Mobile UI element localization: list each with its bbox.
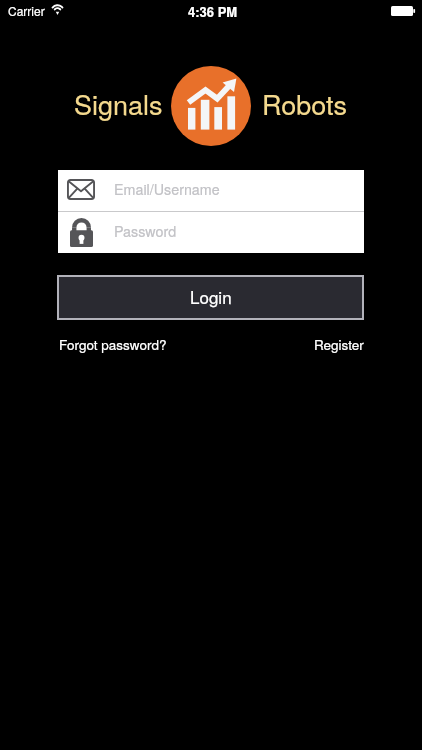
staticText: Signals	[74, 84, 163, 123]
staticText: Carrier	[8, 2, 45, 19]
other: Password	[70, 218, 93, 247]
staticText: Email/Username	[114, 179, 220, 199]
staticText: 4:36 PM	[188, 2, 238, 21]
staticText: Register	[314, 335, 364, 354]
staticText: Login	[190, 284, 232, 308]
button[interactable]: Forgot password?	[55, 331, 171, 358]
button[interactable]: Email	[58, 170, 364, 211]
staticText: Robots	[262, 84, 347, 123]
button[interactable]: Password	[58, 212, 364, 253]
other: Email	[67, 179, 95, 200]
staticText: Password	[114, 221, 177, 241]
staticText: Forgot password?	[59, 335, 167, 354]
button[interactable]: Login	[59, 277, 362, 318]
button[interactable]: Register	[310, 331, 368, 358]
